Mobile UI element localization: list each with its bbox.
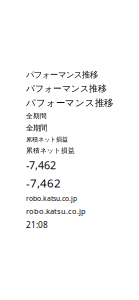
staticText: 累積ネット損益: [26, 146, 75, 155]
staticText: パフォーマンス推移: [26, 70, 98, 80]
staticText: -7,462: [26, 175, 61, 191]
staticText: 累積ネット損益: [26, 136, 68, 143]
staticText: パフォーマンス推移: [26, 97, 113, 109]
staticText: robo.katsu.co.jp: [26, 194, 77, 203]
staticText: 21:08: [26, 219, 48, 230]
staticText: robo.katsu.co.jp: [26, 206, 86, 216]
staticText: 全期間: [26, 112, 47, 120]
staticText: -7,462: [26, 158, 56, 172]
staticText: パフォーマンス推移: [26, 83, 107, 94]
staticText: 全期間: [26, 123, 47, 133]
